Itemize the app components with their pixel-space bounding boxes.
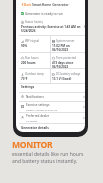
staticText: Time protected [56,56,76,60]
button[interactable]: Generator is ready to run [19,10,85,17]
button[interactable]: Preferred dealer [19,112,85,123]
staticText: 90% [21,44,28,48]
staticText: Outdoor temp [25,72,44,76]
staticText: DC battery voltage [56,72,81,76]
button[interactable]: DC battery voltage [52,72,85,87]
staticText: Settings [21,85,35,89]
staticText: Preferred dealer [26,114,50,118]
staticText: MONITOR [12,139,53,151]
staticText: Weekly, Sunday at 9:35 AM [26,108,58,111]
staticText: WiFi signal [25,39,40,43]
staticText: System server [56,39,75,43]
staticText: Previous activity: Exercise at 1:43 AM o… [21,25,81,33]
staticText: 11:02 PM on 06/16/2023 [52,44,70,52]
staticText: 200 hours [21,61,36,65]
staticText: Generator details [21,126,49,130]
button[interactable]: WiFi signal [21,39,54,54]
staticText: 13.1 V (Good) [52,77,72,81]
button[interactable]: Run hours [21,56,54,71]
staticText: essential details like run hours and bat… [12,151,84,164]
button[interactable]: Back [19,1,34,7]
button[interactable]: Time protected [52,56,85,71]
staticText: No dealer [26,119,38,122]
button[interactable]: Status history [19,18,85,35]
button[interactable]: Notifications [19,92,85,101]
staticText: 473 days since 06/16/2023 [52,61,74,69]
staticText: 73°F [21,77,28,81]
staticText: Status history [25,20,43,24]
staticText: Exercise settings [26,103,50,107]
staticText: SmartHome Generator [32,2,69,6]
button[interactable]: System server [52,39,85,54]
staticText: Notifications [26,95,44,99]
button[interactable]: Exercise settings [19,101,85,112]
staticText: Run hours [25,56,39,60]
staticText: Generator is ready to run [25,12,63,16]
staticText: Back [24,2,32,6]
button[interactable]: Outdoor temp [21,72,54,87]
